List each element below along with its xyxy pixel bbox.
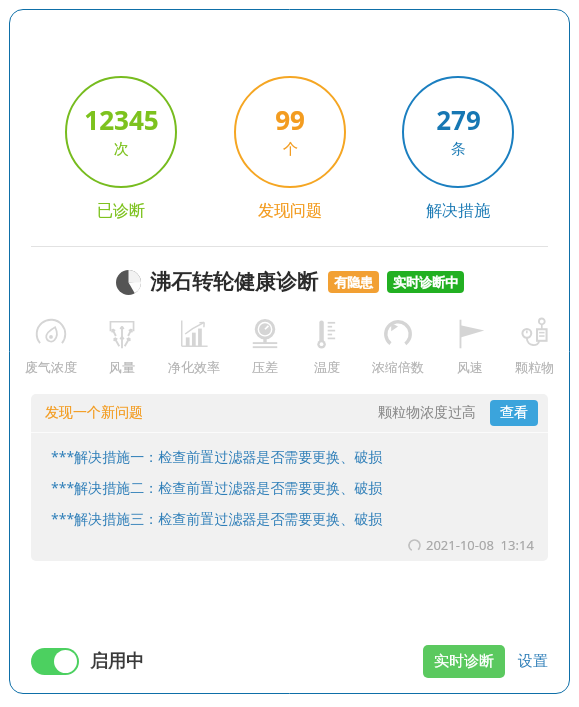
staticText: 颗粒物浓度过高 <box>378 404 476 422</box>
staticText: 温度 <box>314 359 340 375</box>
staticText: 解决措施 <box>426 201 490 221</box>
button[interactable]: 有隐患 <box>328 271 379 293</box>
staticText: 99 <box>275 102 305 137</box>
staticText: 个 <box>283 140 298 159</box>
staticText: ***解决措施二：检查前置过滤器是否需要更换、破损 <box>51 478 383 497</box>
button[interactable]: 查看 <box>490 400 538 426</box>
staticText: 颗粒物 <box>515 359 554 375</box>
staticText: 279 <box>436 102 481 137</box>
staticText: ***解决措施一：检查前置过滤器是否需要更换、破损 <box>51 447 383 466</box>
staticText: 废气浓度 <box>25 359 77 375</box>
button[interactable]: ***解决措施二：检查前置过滤器是否需要更换、破损 <box>31 472 548 503</box>
staticText: 风速 <box>457 359 483 375</box>
staticText: 12345 <box>84 102 159 137</box>
button[interactable]: 12345 <box>65 76 177 188</box>
button[interactable]: 279 <box>402 76 514 188</box>
staticText: 发现问题 <box>258 201 322 221</box>
button[interactable]: 设置 <box>518 648 548 675</box>
button[interactable]: ***解决措施一：检查前置过滤器是否需要更换、破损 <box>31 441 548 472</box>
button[interactable]: 实时诊断 <box>423 645 505 678</box>
staticText: 浓缩倍数 <box>372 359 424 375</box>
staticText: ***解决措施三：检查前置过滤器是否需要更换、破损 <box>51 509 383 528</box>
staticText: 实时诊断 <box>434 652 494 671</box>
button[interactable]: ***解决措施三：检查前置过滤器是否需要更换、破损 <box>31 503 548 534</box>
staticText: 设置 <box>518 652 548 671</box>
staticText: 实时诊断中 <box>393 274 458 290</box>
staticText: 次 <box>114 140 129 159</box>
staticText: 净化效率 <box>168 359 220 375</box>
staticText: 已诊断 <box>97 201 145 221</box>
staticText: 沸石转轮健康诊断 <box>150 269 318 295</box>
staticText: 风量 <box>109 359 135 375</box>
button[interactable]: 实时诊断中 <box>387 271 464 293</box>
staticText: 启用中 <box>90 650 144 673</box>
staticText: 查看 <box>500 404 528 422</box>
button[interactable]: 99 <box>234 76 346 188</box>
staticText: 有隐患 <box>334 274 373 290</box>
staticText: 条 <box>451 140 466 159</box>
staticText: 压差 <box>252 359 278 375</box>
staticText: 发现一个新问题 <box>45 404 143 422</box>
staticText: 2021-10-08 13:14 <box>426 536 534 554</box>
button[interactable]: 启用开关 <box>31 648 79 675</box>
